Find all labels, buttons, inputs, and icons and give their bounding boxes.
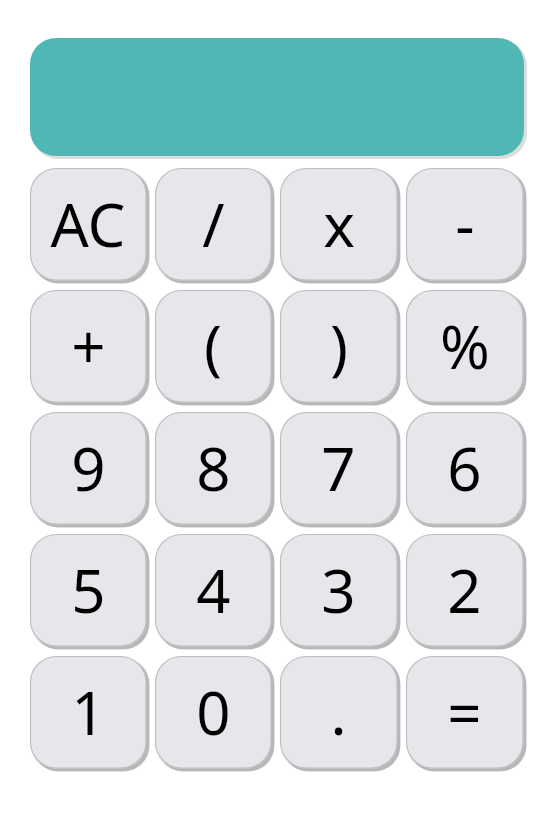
- staticText: %: [440, 305, 490, 387]
- button[interactable]: ): [280, 290, 400, 405]
- button[interactable]: 5: [30, 534, 149, 649]
- button[interactable]: Display: [30, 38, 526, 158]
- button[interactable]: 1: [30, 656, 149, 771]
- staticText: 6: [447, 427, 482, 509]
- button[interactable]: AC: [30, 168, 149, 283]
- staticText: /: [202, 183, 225, 265]
- staticText: .: [330, 671, 347, 753]
- button[interactable]: 3: [280, 534, 400, 649]
- staticText: -: [455, 183, 475, 265]
- staticText: +: [71, 305, 106, 387]
- staticText: (: [204, 305, 222, 387]
- staticText: 0: [196, 671, 231, 753]
- staticText: 3: [321, 549, 356, 631]
- staticText: ): [330, 305, 348, 387]
- staticText: 9: [71, 427, 106, 509]
- button[interactable]: +: [30, 290, 149, 405]
- staticText: AC: [50, 183, 126, 265]
- button[interactable]: =: [406, 656, 526, 771]
- staticText: =: [447, 671, 482, 753]
- button[interactable]: .: [280, 656, 400, 771]
- staticText: 2: [447, 549, 482, 631]
- button[interactable]: 8: [155, 412, 274, 527]
- staticText: x: [323, 183, 355, 265]
- button[interactable]: (: [155, 290, 274, 405]
- button[interactable]: 6: [406, 412, 526, 527]
- staticText: 7: [321, 427, 356, 509]
- staticText: 8: [196, 427, 231, 509]
- button[interactable]: 7: [280, 412, 400, 527]
- button[interactable]: /: [155, 168, 274, 283]
- button[interactable]: -: [406, 168, 526, 283]
- button[interactable]: 9: [30, 412, 149, 527]
- button[interactable]: 2: [406, 534, 526, 649]
- staticText: 5: [71, 549, 106, 631]
- button[interactable]: x: [280, 168, 400, 283]
- staticText: 4: [196, 549, 231, 631]
- staticText: 1: [71, 671, 106, 753]
- button[interactable]: 4: [155, 534, 274, 649]
- button[interactable]: 0: [155, 656, 274, 771]
- button[interactable]: %: [406, 290, 526, 405]
